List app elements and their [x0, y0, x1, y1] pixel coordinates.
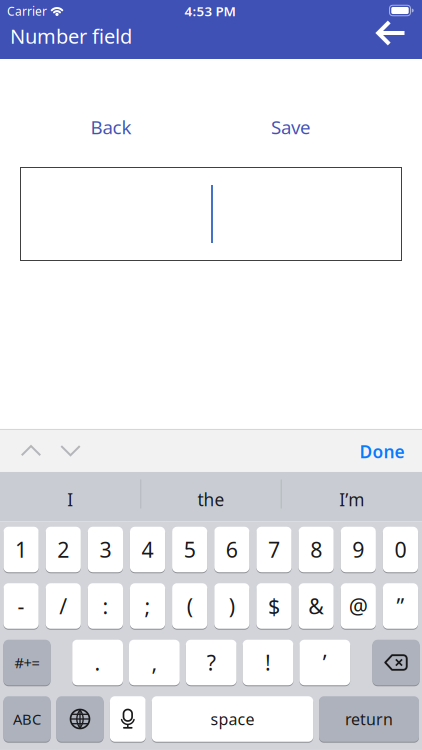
button[interactable]: @ — [341, 583, 376, 629]
staticText: ” — [396, 592, 404, 620]
staticText: - — [18, 592, 25, 620]
button[interactable]: 2 — [46, 526, 81, 573]
button[interactable]: 4 — [130, 526, 165, 573]
button[interactable]: ) — [214, 583, 249, 629]
staticText: & — [308, 592, 324, 620]
button[interactable]: ABC — [3, 696, 50, 742]
staticText: ’ — [323, 648, 327, 677]
button[interactable]: , — [129, 639, 180, 686]
staticText: Done — [359, 440, 404, 463]
button[interactable]: - — [3, 583, 39, 629]
staticText: ) — [229, 592, 235, 620]
staticText: ABC — [13, 709, 41, 729]
button[interactable]: return — [319, 696, 419, 742]
button[interactable]: Back — [71, 109, 151, 145]
button[interactable]: : — [88, 583, 123, 629]
staticText: the — [197, 488, 224, 511]
button[interactable] — [372, 639, 419, 686]
staticText: $ — [268, 592, 280, 620]
button[interactable]: 5 — [172, 526, 207, 573]
staticText: 9 — [352, 535, 364, 564]
staticText: Number field — [10, 23, 132, 49]
staticText: ; — [144, 592, 150, 620]
button[interactable]: Done — [352, 433, 412, 469]
button[interactable]: & — [299, 583, 334, 629]
button[interactable] — [20, 167, 402, 261]
button[interactable]: ? — [186, 639, 237, 686]
staticText: Carrier — [7, 3, 47, 19]
button[interactable]: #+= — [3, 639, 50, 686]
button[interactable]: 0 — [383, 526, 418, 573]
button[interactable]: 9 — [341, 526, 376, 573]
button[interactable]: ” — [383, 583, 418, 629]
button[interactable]: ’ — [299, 639, 350, 686]
button[interactable]: / — [46, 583, 81, 629]
staticText: . — [95, 648, 101, 677]
staticText: I — [67, 488, 73, 511]
staticText: 3 — [99, 535, 111, 564]
button[interactable]: 3 — [88, 526, 123, 573]
button[interactable]: space — [152, 696, 313, 742]
button[interactable]: I — [5, 478, 135, 520]
staticText: 4 — [141, 535, 153, 564]
staticText: ? — [207, 648, 216, 677]
button[interactable]: ; — [130, 583, 165, 629]
staticText: 0 — [394, 535, 406, 564]
staticText: ( — [187, 592, 193, 620]
staticText: : — [102, 592, 108, 620]
button[interactable]: $ — [256, 583, 292, 629]
staticText: 8 — [310, 535, 322, 564]
button[interactable]: I’m — [287, 478, 417, 520]
button[interactable]: ( — [172, 583, 207, 629]
staticText: Save — [271, 115, 311, 139]
staticText: #+= — [14, 653, 39, 672]
button[interactable] — [56, 696, 103, 742]
button[interactable]: the — [146, 478, 276, 520]
staticText: space — [210, 708, 254, 730]
button[interactable]: Save — [251, 109, 331, 145]
button[interactable]: 7 — [256, 526, 292, 573]
staticText: 6 — [226, 535, 238, 564]
button[interactable] — [369, 13, 413, 53]
button[interactable]: 6 — [214, 526, 249, 573]
staticText: ! — [265, 648, 271, 677]
staticText: 7 — [268, 535, 280, 564]
button[interactable]: 1 — [3, 526, 39, 573]
staticText: return — [345, 708, 393, 730]
button[interactable] — [16, 438, 46, 462]
staticText: / — [59, 592, 67, 620]
staticText: 5 — [184, 535, 196, 564]
staticText: 1 — [15, 535, 27, 564]
staticText: , — [151, 648, 157, 677]
button[interactable]: . — [72, 639, 123, 686]
staticText: 2 — [57, 535, 69, 564]
button[interactable] — [55, 438, 85, 462]
button[interactable]: 8 — [299, 526, 334, 573]
button[interactable] — [110, 696, 146, 742]
staticText: 4:53 PM — [184, 2, 235, 20]
button[interactable]: ! — [243, 639, 293, 686]
staticText: @ — [349, 592, 368, 620]
staticText: Back — [90, 115, 131, 139]
staticText: I’m — [339, 488, 364, 511]
